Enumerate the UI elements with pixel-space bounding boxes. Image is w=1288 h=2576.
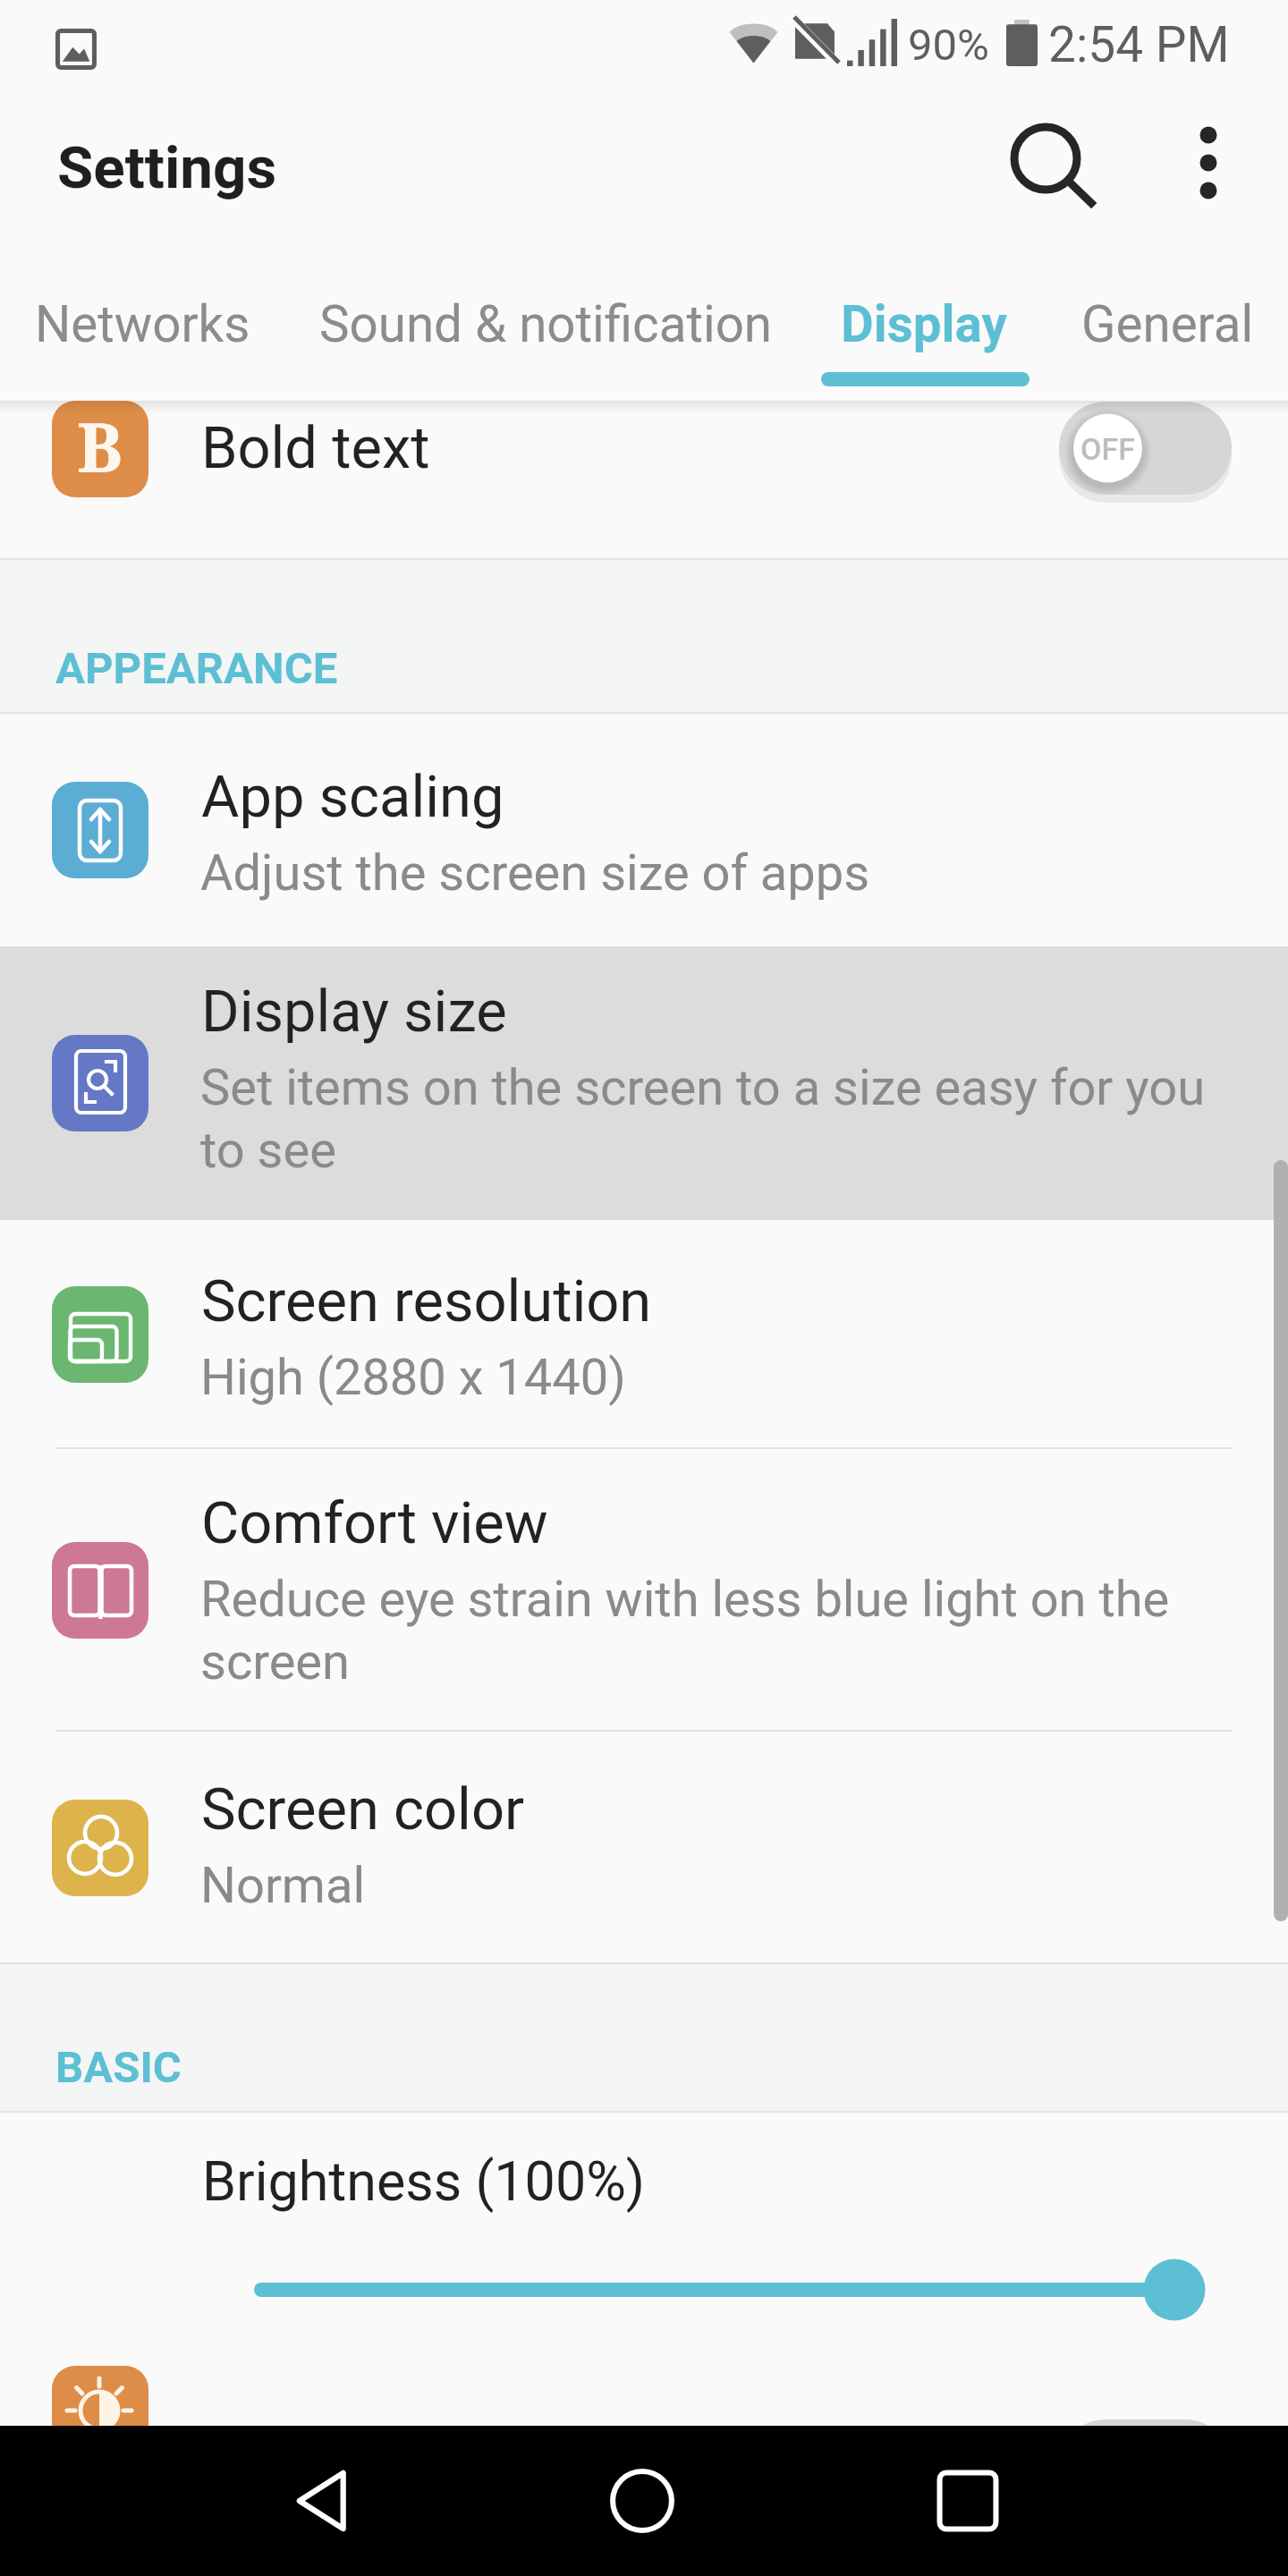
staticText: Bold text [201, 414, 430, 482]
button[interactable]: App scaling [0, 714, 1288, 946]
button[interactable]: Sound & notification [284, 259, 809, 401]
staticText: APPEARANCE [55, 643, 338, 694]
staticText: Display [841, 295, 1007, 354]
staticText: Comfort view [201, 1489, 548, 1557]
staticText: Reduce eye strain with less blue light o… [200, 1570, 1170, 1629]
button[interactable]: Brightness (100%) [0, 2113, 1288, 2426]
staticText: Screen resolution [201, 1267, 652, 1335]
staticText: Display size [201, 978, 507, 1046]
button[interactable]: Search [983, 100, 1108, 225]
button[interactable]: Back [250, 2429, 394, 2572]
button[interactable]: Screen resolution [0, 1220, 1288, 1449]
staticText: OFF [1080, 431, 1135, 467]
button[interactable]: Recents [896, 2429, 1039, 2572]
button[interactable]: Display [809, 259, 1046, 401]
staticText: General [1081, 295, 1254, 354]
button[interactable]: More options [1155, 100, 1262, 208]
button[interactable]: Display size [0, 946, 1288, 1220]
staticText: Normal [200, 1856, 366, 1915]
button[interactable]: Comfort view [0, 1449, 1288, 1732]
staticText: Set items on the screen to a size easy f… [200, 1058, 1206, 1117]
button[interactable]: Networks [0, 259, 284, 401]
staticText: Brightness (100%) [202, 2149, 646, 2213]
button[interactable]: Home [571, 2429, 714, 2572]
staticText: Sound & notification [319, 295, 773, 354]
button[interactable]: B [0, 340, 1288, 560]
staticText: screen [200, 1632, 350, 1691]
staticText: Settings [57, 133, 277, 202]
button[interactable]: OFF [1059, 2419, 1232, 2525]
staticText: Networks [35, 295, 250, 354]
staticText: to see [200, 1121, 336, 1180]
staticText: Adjust the screen size of apps [200, 843, 870, 902]
staticText: BASIC [55, 2042, 182, 2093]
staticText: B [77, 401, 123, 493]
staticText: 90% [908, 20, 989, 71]
staticText: Screen color [201, 1775, 524, 1843]
button[interactable]: Screen color [0, 1732, 1288, 1964]
staticText: High (2880 x 1440) [200, 1348, 626, 1407]
button[interactable]: OFF [1059, 402, 1232, 507]
staticText: 2:54 PM [1048, 16, 1230, 73]
staticText: App scaling [201, 763, 504, 831]
button[interactable]: General [1046, 259, 1288, 401]
